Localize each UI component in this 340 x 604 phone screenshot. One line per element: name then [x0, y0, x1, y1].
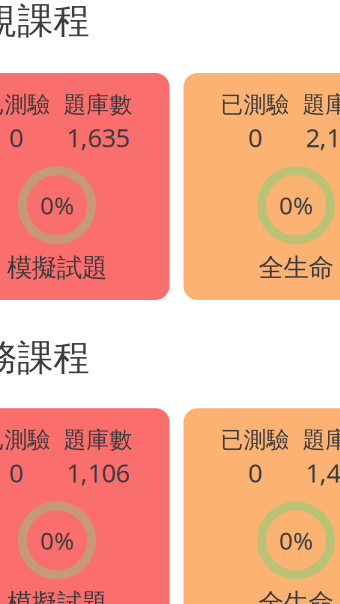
staticText: 0%: [279, 524, 313, 556]
staticText: 題庫數: [302, 426, 340, 454]
staticText: 模擬試題: [7, 587, 107, 604]
staticText: 已測驗: [220, 91, 289, 118]
staticText: 模擬試題: [7, 252, 107, 283]
button[interactable]: 已測驗: [0, 408, 169, 604]
staticText: 法規課程: [0, 0, 89, 43]
staticText: 0: [248, 120, 262, 154]
staticText: 1,106: [66, 456, 129, 489]
staticText: 2,104: [305, 120, 340, 154]
staticText: 0: [9, 120, 23, 154]
staticText: 實務課程: [0, 336, 89, 380]
staticText: 1,480: [305, 456, 340, 489]
staticText: 0: [248, 456, 262, 489]
staticText: 已測驗: [220, 426, 289, 454]
staticText: 1,635: [66, 120, 129, 154]
staticText: 題庫數: [63, 91, 132, 118]
staticText: 已測驗: [0, 426, 50, 454]
staticText: 0: [9, 456, 23, 489]
staticText: 全生命: [258, 252, 333, 283]
button[interactable]: 已測驗: [0, 73, 169, 300]
staticText: 0%: [279, 189, 313, 221]
staticText: 0%: [40, 524, 74, 556]
button[interactable]: 已測驗: [183, 408, 340, 604]
button[interactable]: 已測驗: [183, 73, 340, 300]
staticText: 全生命: [258, 587, 333, 604]
staticText: 0%: [40, 189, 74, 221]
staticText: 題庫數: [63, 426, 132, 454]
staticText: 已測驗: [0, 91, 50, 118]
staticText: 題庫數: [302, 91, 340, 118]
